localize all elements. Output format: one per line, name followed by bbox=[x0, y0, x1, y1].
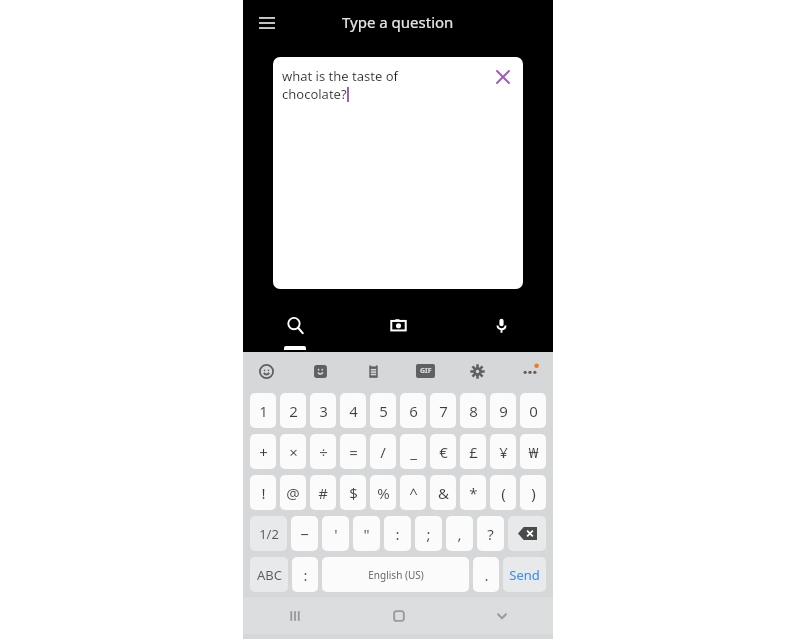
button[interactable]: Keyboard settings bbox=[466, 360, 488, 382]
button[interactable]: Menu bbox=[251, 7, 283, 39]
staticText: 1 bbox=[259, 401, 268, 421]
button[interactable]: Voice search bbox=[450, 308, 553, 352]
staticText: English (US) bbox=[368, 568, 424, 582]
button[interactable]: $ bbox=[340, 475, 366, 510]
staticText: £ bbox=[469, 442, 478, 462]
staticText: # bbox=[318, 483, 328, 503]
button[interactable]: More options bbox=[519, 360, 541, 382]
button[interactable]: ? bbox=[477, 516, 504, 551]
button[interactable]: # bbox=[310, 475, 336, 510]
staticText: ( bbox=[501, 483, 506, 503]
button[interactable]: : bbox=[384, 516, 411, 551]
staticText: & bbox=[438, 483, 449, 503]
staticText: chocolate? bbox=[282, 85, 347, 103]
button[interactable]: " bbox=[353, 516, 380, 551]
staticText: Send bbox=[509, 566, 540, 584]
staticText: 3 bbox=[319, 401, 328, 421]
button[interactable]: ; bbox=[415, 516, 442, 551]
staticText: : bbox=[395, 524, 400, 544]
staticText: / bbox=[380, 442, 386, 462]
staticText: ) bbox=[531, 483, 536, 503]
staticText: GIF bbox=[420, 366, 432, 376]
button[interactable]: / bbox=[370, 434, 396, 469]
button[interactable]: @ bbox=[280, 475, 306, 510]
staticText: 9 bbox=[499, 401, 508, 421]
button[interactable]: ( bbox=[490, 475, 516, 510]
staticText: * bbox=[469, 483, 478, 503]
button[interactable]: Backspace bbox=[508, 516, 546, 551]
button[interactable]: Recent apps bbox=[243, 597, 347, 634]
button[interactable]: ! bbox=[250, 475, 276, 510]
staticText: = bbox=[349, 442, 358, 462]
staticText: what is the taste of bbox=[282, 67, 398, 85]
button[interactable]: ¥ bbox=[490, 434, 516, 469]
button[interactable]: : bbox=[292, 557, 318, 592]
staticText: ? bbox=[487, 524, 494, 544]
staticText: . bbox=[484, 565, 489, 585]
staticText: 5 bbox=[379, 401, 388, 421]
button[interactable]: _ bbox=[400, 434, 426, 469]
button[interactable]: Camera lens bbox=[347, 308, 450, 352]
staticText: ABC bbox=[257, 566, 282, 584]
button[interactable]: 2 bbox=[280, 393, 306, 428]
button[interactable]: . bbox=[473, 557, 499, 592]
button[interactable]: × bbox=[280, 434, 306, 469]
button[interactable]: ₩ bbox=[520, 434, 546, 469]
button[interactable]: ABC bbox=[250, 557, 288, 592]
staticText: % bbox=[377, 483, 390, 503]
button[interactable]: ÷ bbox=[310, 434, 336, 469]
button[interactable]: GIF bbox=[415, 361, 435, 381]
button[interactable]: Home bbox=[347, 597, 450, 634]
button[interactable]: 6 bbox=[400, 393, 426, 428]
button[interactable]: Clipboard bbox=[362, 360, 384, 382]
staticText: : bbox=[303, 565, 308, 585]
button[interactable]: 0 bbox=[520, 393, 546, 428]
button[interactable]: 3 bbox=[310, 393, 336, 428]
button[interactable]: − bbox=[291, 516, 318, 551]
button[interactable]: Stickers bbox=[309, 360, 331, 382]
staticText: 0 bbox=[529, 401, 538, 421]
staticText: 1/2 bbox=[259, 525, 279, 543]
staticText: ^ bbox=[409, 483, 418, 503]
staticText: @ bbox=[286, 483, 300, 503]
button[interactable]: ) bbox=[520, 475, 546, 510]
button[interactable]: + bbox=[250, 434, 276, 469]
staticText: " bbox=[363, 524, 370, 544]
button[interactable]: £ bbox=[460, 434, 486, 469]
staticText: ; bbox=[426, 524, 431, 544]
staticText: , bbox=[457, 524, 462, 544]
button[interactable]: 1 bbox=[250, 393, 276, 428]
button[interactable]: % bbox=[370, 475, 396, 510]
staticText: 8 bbox=[469, 401, 478, 421]
button[interactable]: Send bbox=[503, 557, 546, 592]
staticText: € bbox=[439, 442, 448, 462]
button[interactable]: , bbox=[446, 516, 473, 551]
button[interactable]: € bbox=[430, 434, 456, 469]
button[interactable]: 1/2 bbox=[250, 516, 287, 551]
staticText: − bbox=[300, 524, 309, 544]
button[interactable]: = bbox=[340, 434, 366, 469]
button[interactable]: 8 bbox=[460, 393, 486, 428]
button[interactable]: 9 bbox=[490, 393, 516, 428]
button[interactable]: * bbox=[460, 475, 486, 510]
staticText: $ bbox=[349, 483, 358, 503]
button[interactable]: Emoji bbox=[255, 360, 277, 382]
staticText: ' bbox=[334, 524, 338, 544]
button[interactable]: ^ bbox=[400, 475, 426, 510]
button[interactable]: 4 bbox=[340, 393, 366, 428]
button[interactable]: 7 bbox=[430, 393, 456, 428]
staticText: 2 bbox=[289, 401, 298, 421]
button[interactable]: Hide keyboard bbox=[450, 597, 553, 634]
button[interactable]: & bbox=[430, 475, 456, 510]
button[interactable]: Clear text bbox=[489, 63, 517, 91]
button[interactable]: ' bbox=[322, 516, 349, 551]
staticText: + bbox=[259, 442, 268, 462]
staticText: 6 bbox=[409, 401, 418, 421]
button[interactable]: 5 bbox=[370, 393, 396, 428]
button[interactable]: Search bbox=[243, 308, 347, 352]
button[interactable]: English (US) bbox=[322, 557, 469, 592]
staticText: Type a question bbox=[342, 12, 454, 32]
staticText: × bbox=[289, 442, 298, 462]
staticText: 7 bbox=[439, 401, 448, 421]
staticText: ÷ bbox=[319, 442, 328, 462]
